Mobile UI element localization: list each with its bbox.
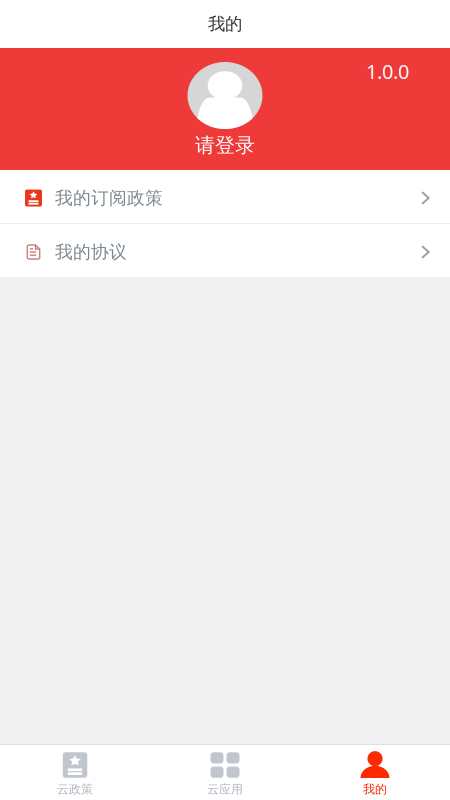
staticText: 我的	[208, 13, 242, 35]
staticText: 我的协议	[55, 241, 127, 263]
button[interactable]: 我的订阅政策	[0, 170, 450, 223]
staticText: 请登录	[195, 133, 255, 158]
staticText: 云应用	[207, 782, 243, 797]
button[interactable]: 请登录	[195, 129, 255, 158]
staticText: 云政策	[57, 782, 93, 797]
button[interactable]: 云应用	[150, 744, 300, 800]
staticText: 1.0.0	[366, 58, 409, 85]
button[interactable]: 我的协议	[0, 224, 450, 277]
staticText: 我的	[363, 782, 387, 797]
staticText: 我的订阅政策	[55, 187, 163, 209]
button[interactable]: 云政策	[0, 744, 150, 800]
button[interactable]: 我的	[300, 744, 450, 800]
